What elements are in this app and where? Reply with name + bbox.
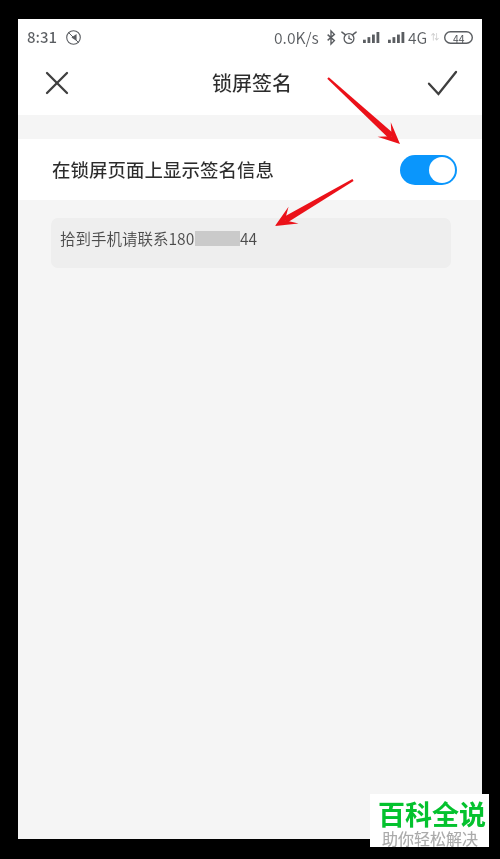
button[interactable]: 拾到手机请联系180 bbox=[51, 218, 451, 268]
staticText: 4G bbox=[408, 26, 428, 48]
button[interactable]: Close bbox=[33, 59, 81, 107]
staticText: 拾到手机请联系180 bbox=[60, 227, 195, 249]
staticText: 0.0K/s bbox=[274, 26, 319, 48]
staticText: 在锁屏页面上显示签名信息 bbox=[52, 156, 275, 183]
staticText: 8:31 bbox=[27, 26, 58, 48]
button[interactable]: Confirm bbox=[418, 59, 466, 107]
staticText: 百科全说 bbox=[378, 794, 486, 833]
staticText: 44 bbox=[453, 31, 465, 44]
staticText: ⇅ bbox=[431, 31, 439, 43]
staticText: 助你轻松解决 bbox=[382, 826, 479, 849]
button[interactable]: Show signature on lock screen bbox=[400, 155, 457, 185]
staticText: 锁屏签名 bbox=[212, 68, 292, 97]
staticText: 44 bbox=[240, 227, 258, 249]
button[interactable]: 在锁屏页面上显示签名信息 bbox=[18, 139, 482, 200]
